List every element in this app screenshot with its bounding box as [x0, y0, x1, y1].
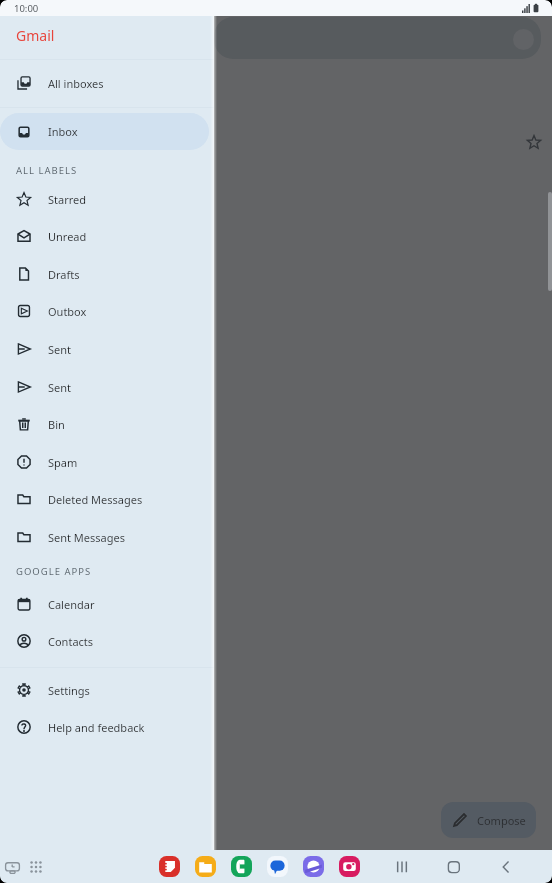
- button[interactable]: Sent: [0, 368, 209, 406]
- staticText: Drafts: [48, 267, 80, 282]
- button[interactable]: Bin: [0, 405, 209, 443]
- button[interactable]: My Files: [195, 856, 216, 877]
- button[interactable]: Camera: [339, 856, 360, 877]
- staticText: GOOGLE APPS: [16, 565, 92, 578]
- staticText: Spam: [48, 455, 78, 470]
- button[interactable]: Samsung Notes: [159, 856, 180, 877]
- button[interactable]: Internet: [303, 856, 324, 877]
- button[interactable]: Recents: [391, 856, 413, 878]
- button[interactable]: Compose: [441, 802, 536, 838]
- button[interactable]: Starred: [0, 180, 209, 218]
- button[interactable]: Help and feedback: [0, 708, 209, 746]
- staticText: Bin: [48, 417, 65, 432]
- button[interactable]: Home: [443, 856, 465, 878]
- button[interactable]: All apps: [26, 857, 46, 877]
- staticText: Calendar: [48, 597, 95, 612]
- staticText: Gmail: [16, 26, 55, 45]
- button[interactable]: Inbox: [0, 113, 209, 150]
- button[interactable]: Settings: [0, 671, 209, 709]
- button[interactable]: Calendar: [0, 585, 209, 623]
- staticText: Help and feedback: [48, 720, 145, 735]
- button[interactable]: Spam: [0, 443, 209, 481]
- button[interactable]: Deleted Messages: [0, 480, 209, 518]
- button[interactable]: Contacts: [0, 622, 209, 660]
- staticText: Deleted Messages: [48, 492, 143, 507]
- button[interactable]: Sent Messages: [0, 518, 209, 556]
- button[interactable]: Phone: [231, 856, 252, 877]
- staticText: Starred: [48, 192, 87, 207]
- button[interactable]: Unread: [0, 217, 209, 255]
- staticText: Inbox: [48, 124, 78, 139]
- button[interactable]: Messages: [267, 856, 288, 877]
- button[interactable]: Drafts: [0, 255, 209, 293]
- button[interactable]: Back: [495, 856, 517, 878]
- staticText: Contacts: [48, 634, 94, 649]
- staticText: Compose: [477, 813, 526, 828]
- button[interactable]: Sent: [0, 330, 209, 368]
- staticText: Outbox: [48, 304, 87, 319]
- button[interactable]: DeX mode: [2, 857, 22, 877]
- staticText: Sent Messages: [48, 530, 125, 545]
- staticText: Unread: [48, 229, 87, 244]
- staticText: Settings: [48, 683, 90, 698]
- button[interactable]: Outbox: [0, 292, 209, 330]
- staticText: Sent: [48, 380, 72, 395]
- staticText: Sent: [48, 342, 72, 357]
- button[interactable]: All inboxes: [0, 59, 209, 107]
- staticText: ALL LABELS: [16, 164, 78, 177]
- staticText: 10:00: [14, 2, 39, 15]
- staticText: All inboxes: [48, 76, 104, 91]
